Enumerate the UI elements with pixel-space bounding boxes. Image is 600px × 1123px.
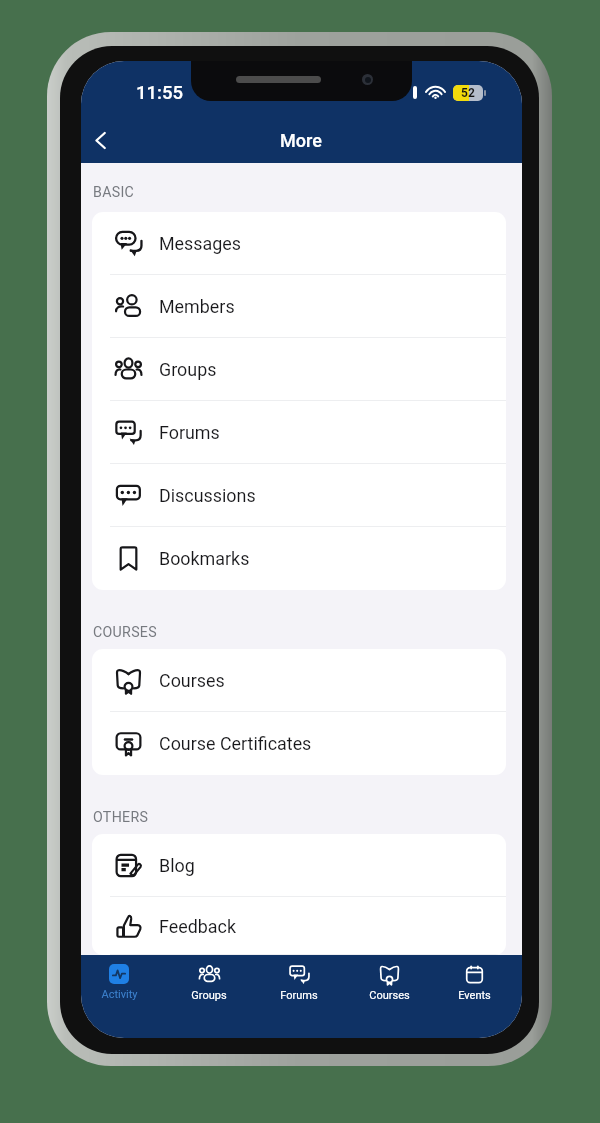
staticText: Groups	[159, 359, 217, 380]
staticText: Groups	[191, 989, 227, 1002]
staticText: Forums	[159, 422, 220, 443]
button[interactable]: Courses	[92, 649, 506, 712]
button[interactable]: Back	[81, 117, 119, 163]
button[interactable]: Messages	[92, 212, 506, 275]
staticText: More	[280, 130, 322, 151]
staticText: Members	[159, 296, 235, 317]
staticText: Forums	[280, 989, 318, 1002]
button[interactable]: Members	[92, 275, 506, 338]
button[interactable]: Feedback	[92, 897, 506, 955]
staticText: Blog	[159, 855, 195, 876]
button[interactable]: Discussions	[92, 464, 506, 527]
staticText: Discussions	[159, 485, 256, 506]
staticText: BASIC	[93, 184, 135, 201]
staticText: COURSES	[93, 624, 157, 641]
button[interactable]: Forums	[254, 955, 344, 1038]
staticText: OTHERS	[93, 809, 149, 826]
staticText: Feedback	[159, 916, 236, 937]
staticText: Course Certificates	[159, 733, 312, 754]
staticText: Courses	[369, 989, 410, 1002]
staticText: Courses	[159, 670, 225, 691]
staticText: 52	[461, 86, 475, 100]
button[interactable]: Blog	[92, 834, 506, 897]
button[interactable]: Activity	[81, 955, 164, 1038]
button[interactable]: Course Certificates	[92, 712, 506, 775]
button[interactable]: Events	[434, 955, 515, 1038]
staticText: Messages	[159, 233, 242, 254]
button[interactable]: Bookmarks	[92, 527, 506, 590]
staticText: Bookmarks	[159, 548, 250, 569]
staticText: 11:55	[136, 82, 183, 104]
button[interactable]: Courses	[344, 955, 434, 1038]
button[interactable]: Groups	[164, 955, 254, 1038]
staticText: Activity	[101, 988, 138, 1001]
button[interactable]: Forums	[92, 401, 506, 464]
button[interactable]: Groups	[92, 338, 506, 401]
staticText: Events	[458, 989, 491, 1002]
